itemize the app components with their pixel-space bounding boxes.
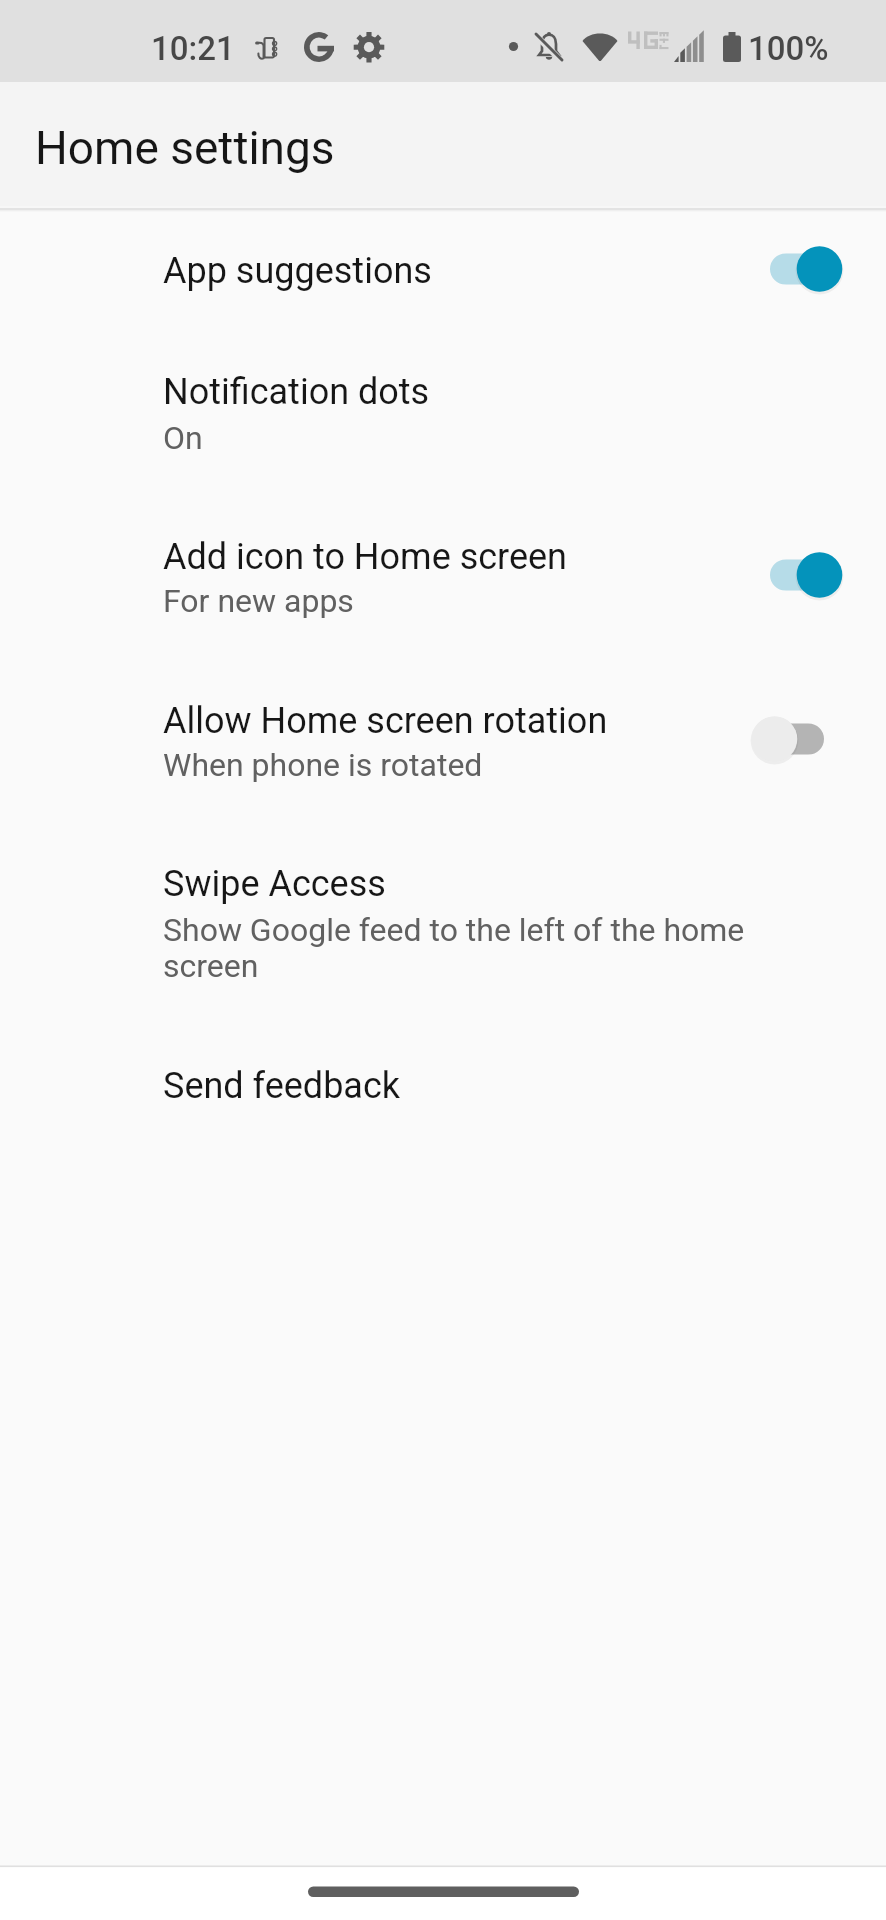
button[interactable]: App suggestions xyxy=(0,211,886,330)
staticText: Send feedback xyxy=(163,1065,401,1107)
button[interactable]: Switch on xyxy=(746,233,862,305)
staticText: Allow Home screen rotation xyxy=(163,700,608,742)
button[interactable]: Allow Home screen rotation xyxy=(0,660,886,824)
staticText: Add icon to Home screen xyxy=(163,536,567,578)
staticText: 10:21 xyxy=(151,29,235,68)
button[interactable]: Add icon to Home screen xyxy=(0,495,886,660)
staticText: When phone is rotated xyxy=(163,746,758,784)
staticText: App suggestions xyxy=(163,250,432,292)
staticText: Show Google feed to the left of the home… xyxy=(163,911,758,984)
staticText: For new apps xyxy=(163,582,758,620)
staticText: Notification dots xyxy=(163,371,430,413)
staticText: Swipe Access xyxy=(163,863,386,905)
button[interactable]: Swipe Access xyxy=(0,824,886,1025)
button[interactable]: Switch on xyxy=(746,539,862,611)
button[interactable]: Send feedback xyxy=(0,1025,886,1145)
staticText: Home settings xyxy=(35,121,335,175)
button[interactable]: Notification dots xyxy=(0,330,886,495)
staticText: 100% xyxy=(748,29,829,68)
button[interactable]: Switch off xyxy=(746,703,862,775)
staticText: On xyxy=(163,419,758,457)
